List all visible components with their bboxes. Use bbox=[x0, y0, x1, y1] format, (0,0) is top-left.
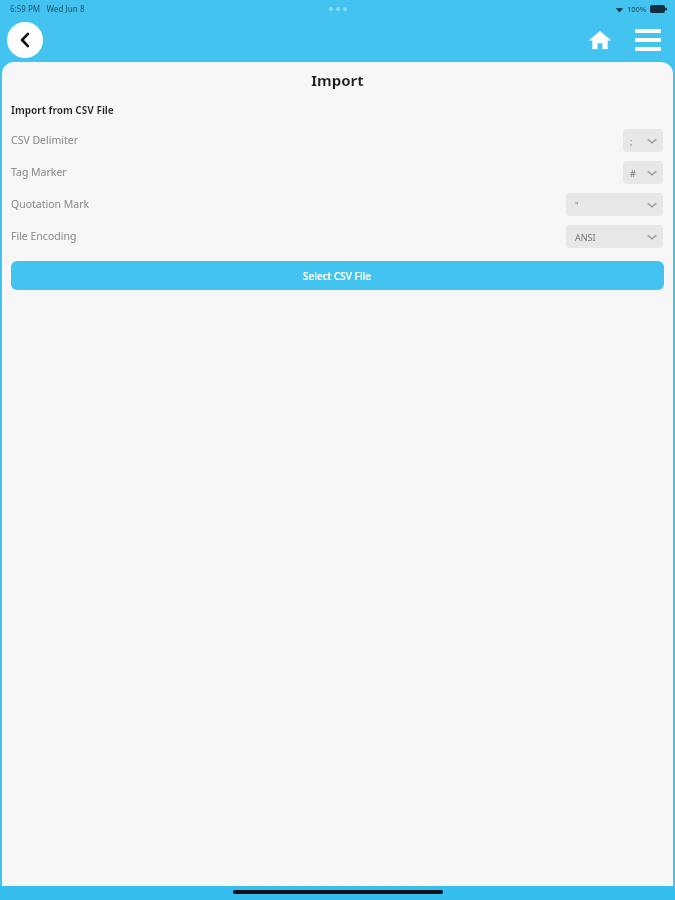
button[interactable]: Back bbox=[7, 22, 43, 58]
staticText: 100% bbox=[627, 4, 647, 14]
staticText: 6:59 PM Wed Jun 8 bbox=[10, 3, 85, 14]
staticText: Select CSV File bbox=[303, 269, 372, 283]
button[interactable]: Quotation Mark bbox=[2, 188, 673, 220]
staticText: Quotation Mark bbox=[11, 197, 90, 211]
staticText: ; bbox=[630, 135, 633, 147]
button[interactable]: Menu bbox=[633, 25, 663, 55]
staticText: " bbox=[575, 199, 579, 211]
button[interactable]: CSV Delimiter bbox=[2, 124, 673, 156]
button[interactable]: Tag Marker bbox=[2, 156, 673, 188]
staticText: CSV Delimiter bbox=[11, 133, 79, 147]
staticText: ANSI bbox=[575, 231, 596, 243]
staticText: Import bbox=[2, 70, 673, 90]
staticText: Import from CSV File bbox=[11, 103, 114, 117]
button[interactable]: File Encoding bbox=[2, 220, 673, 252]
button[interactable]: Home bbox=[585, 25, 615, 55]
staticText: File Encoding bbox=[11, 229, 77, 243]
button[interactable]: Select CSV File bbox=[11, 261, 664, 290]
staticText: Tag Marker bbox=[11, 165, 67, 179]
staticText: # bbox=[630, 167, 636, 179]
